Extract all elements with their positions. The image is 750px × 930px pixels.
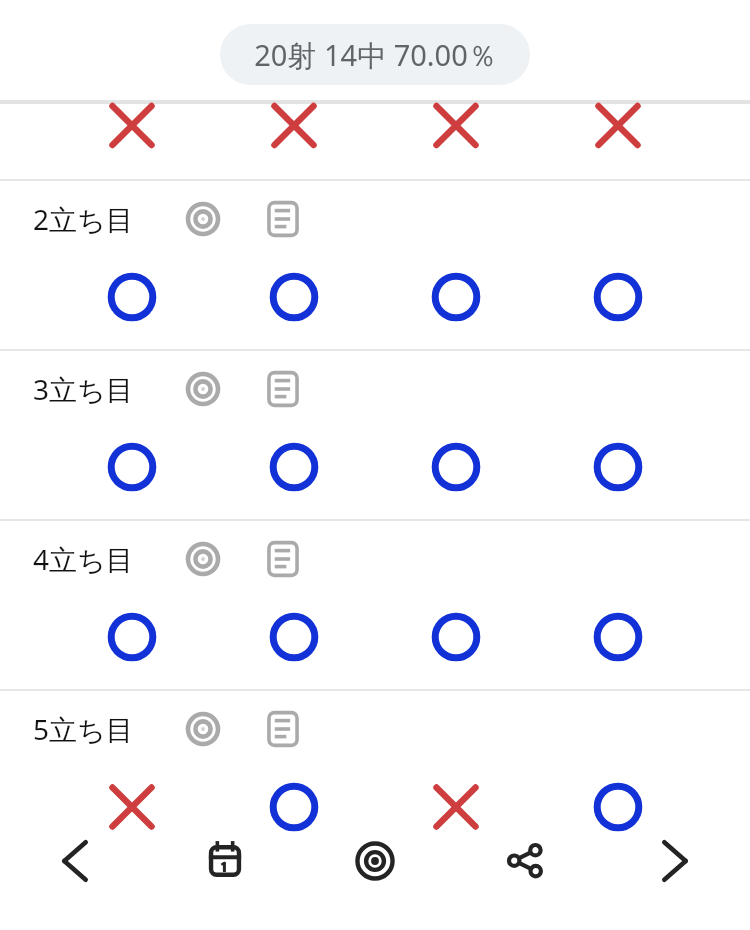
- button[interactable]: Previous day: [0, 796, 150, 926]
- button[interactable]: Target detail: [181, 537, 225, 581]
- button[interactable]: Memo: [261, 707, 305, 751]
- button[interactable]: Target: [300, 796, 450, 926]
- button[interactable]: [213, 104, 375, 147]
- button[interactable]: [537, 597, 699, 676]
- button[interactable]: [375, 767, 537, 846]
- button[interactable]: [537, 427, 699, 506]
- button[interactable]: Memo: [261, 367, 305, 411]
- button[interactable]: [375, 257, 537, 336]
- staticText: 20射 14中 70.00％: [254, 35, 497, 75]
- button[interactable]: [375, 104, 537, 147]
- staticText: 2立ち目: [33, 200, 134, 238]
- button[interactable]: [51, 767, 213, 846]
- button[interactable]: [51, 104, 213, 147]
- button[interactable]: Target detail: [181, 367, 225, 411]
- button[interactable]: [375, 427, 537, 506]
- button[interactable]: Share: [450, 796, 600, 926]
- button[interactable]: [213, 767, 375, 846]
- staticText: 4立ち目: [33, 540, 134, 578]
- button[interactable]: [213, 427, 375, 506]
- button[interactable]: 20射 14中 70.00％: [220, 24, 530, 85]
- button[interactable]: [213, 597, 375, 676]
- button[interactable]: Memo: [261, 197, 305, 241]
- button[interactable]: [537, 104, 699, 147]
- button[interactable]: Calendar: [150, 796, 300, 926]
- button[interactable]: Memo: [261, 537, 305, 581]
- button[interactable]: Target detail: [181, 707, 225, 751]
- button[interactable]: [537, 767, 699, 846]
- button[interactable]: Target detail: [181, 197, 225, 241]
- button[interactable]: [213, 257, 375, 336]
- button[interactable]: [375, 597, 537, 676]
- staticText: 5立ち目: [33, 710, 134, 748]
- button[interactable]: [537, 257, 699, 336]
- staticText: 3立ち目: [33, 370, 134, 408]
- button[interactable]: Next day: [600, 796, 750, 926]
- button[interactable]: [51, 257, 213, 336]
- button[interactable]: [51, 597, 213, 676]
- button[interactable]: [51, 427, 213, 506]
